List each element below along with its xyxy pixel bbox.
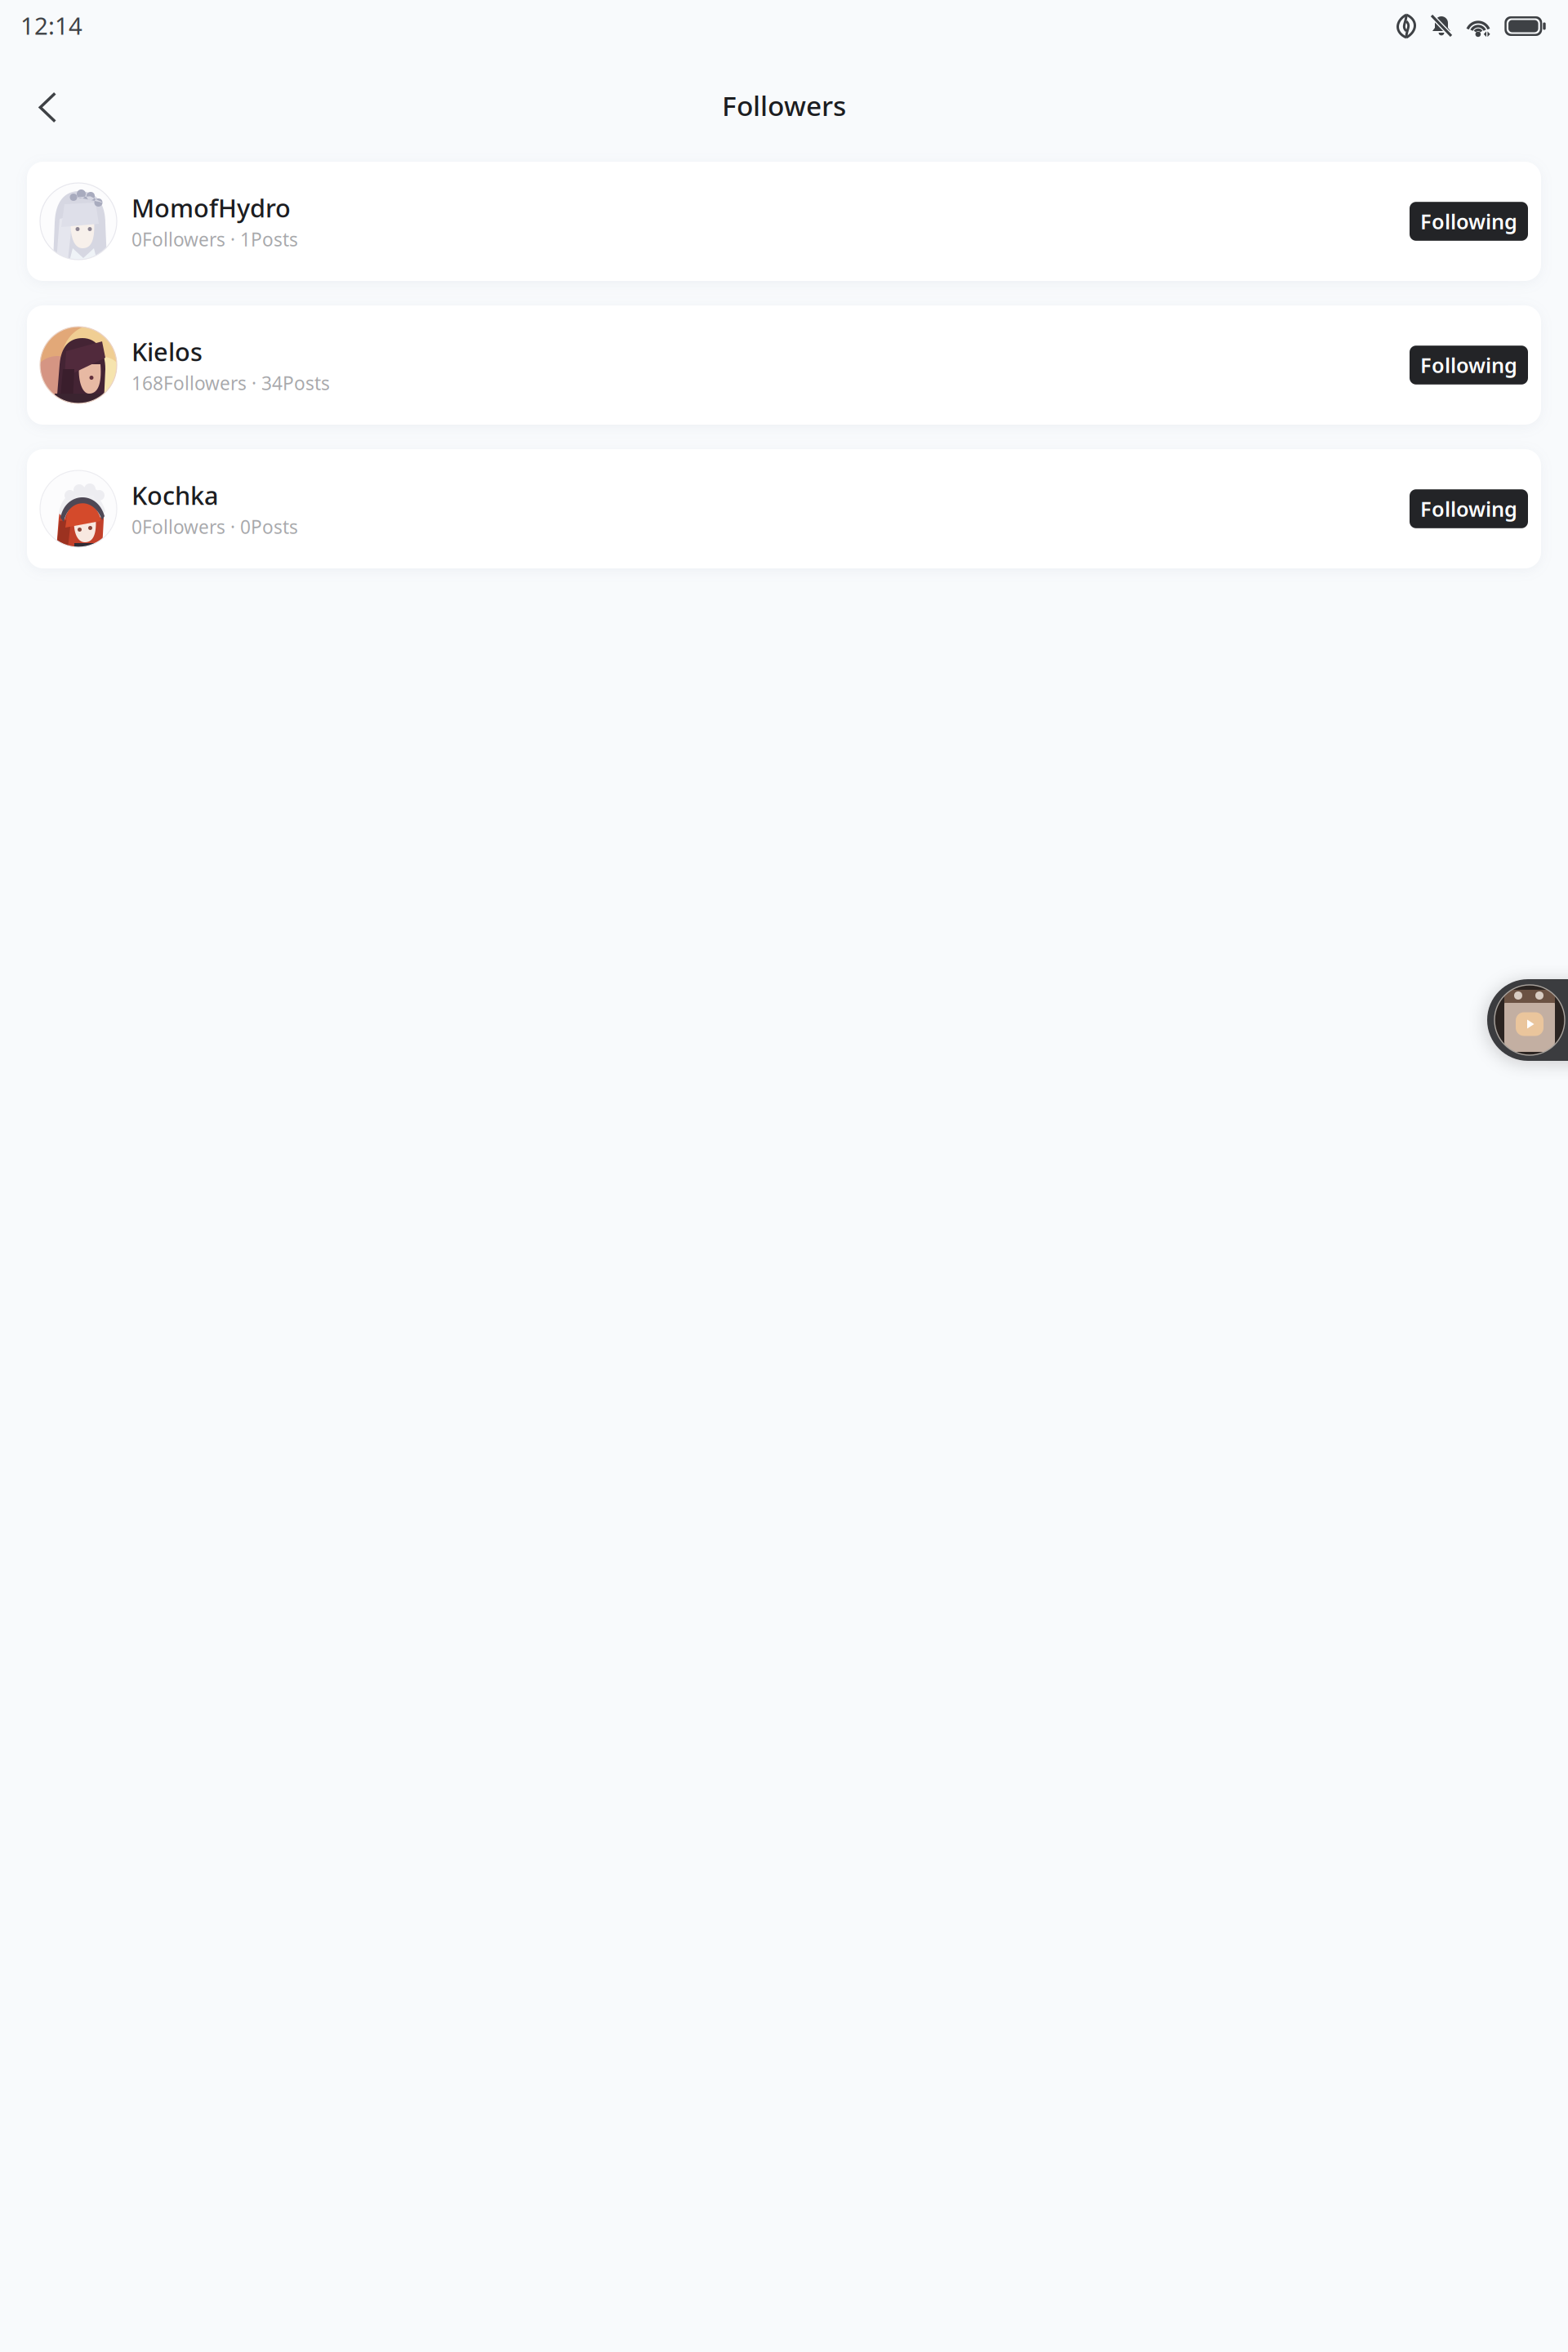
staticText: 0Followers · 0Posts — [131, 514, 298, 539]
staticText: Following — [1420, 495, 1517, 523]
staticText: Followers — [722, 87, 846, 123]
staticText: MomofHydro — [131, 191, 291, 224]
staticText: Kochka — [131, 479, 219, 512]
staticText: 168Followers · 34Posts — [131, 371, 330, 395]
staticText: Following — [1420, 351, 1517, 379]
button[interactable]: Mini player — [1487, 979, 1568, 1061]
staticText: Following — [1420, 208, 1517, 235]
button[interactable]: MomofHydro — [27, 162, 1541, 281]
button[interactable]: Following — [1410, 346, 1528, 384]
button[interactable]: Following — [1410, 489, 1528, 528]
button[interactable]: Kielos — [27, 305, 1541, 425]
button[interactable]: Kochka — [27, 449, 1541, 568]
staticText: Kielos — [131, 335, 203, 368]
staticText: 12:14 — [20, 9, 82, 41]
button[interactable]: Back — [0, 69, 77, 136]
staticText: 0Followers · 1Posts — [131, 227, 298, 251]
button[interactable]: Following — [1410, 202, 1528, 241]
